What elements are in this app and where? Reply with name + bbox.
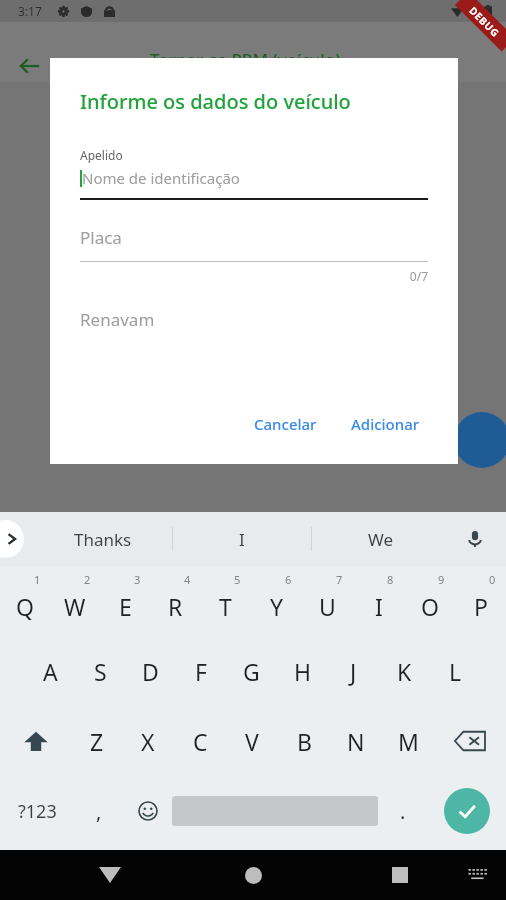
button[interactable]: We: [312, 512, 450, 566]
staticText: Tornar-se PRM (veículo): [150, 48, 341, 71]
button[interactable]: Renavam: [80, 308, 155, 331]
staticText: Cancelar: [254, 414, 317, 434]
staticText: O: [421, 591, 439, 622]
staticText: 3:17: [18, 3, 42, 19]
button[interactable]: Adicionar: [343, 406, 428, 442]
button[interactable]: Q: [0, 566, 50, 636]
staticText: W: [64, 591, 86, 622]
staticText: S: [94, 656, 107, 687]
staticText: X: [141, 726, 155, 757]
button[interactable]: M: [382, 706, 434, 776]
staticText: T: [219, 591, 232, 622]
staticText: C: [193, 726, 208, 757]
button[interactable]: Emoji: [123, 776, 172, 846]
button[interactable]: O: [404, 566, 455, 636]
staticText: L: [449, 656, 462, 687]
staticText: We: [368, 528, 394, 551]
button[interactable]: ?123: [0, 776, 74, 846]
button[interactable]: Hide keyboard: [88, 853, 132, 897]
button[interactable]: C: [174, 706, 226, 776]
button[interactable]: Thanks: [34, 512, 172, 566]
staticText: H: [294, 656, 312, 687]
staticText: B: [297, 726, 312, 757]
button[interactable]: I: [353, 566, 404, 636]
staticText: U: [319, 591, 336, 622]
staticText: 9: [438, 572, 445, 587]
button[interactable]: K: [379, 636, 430, 706]
button[interactable]: Recents: [378, 853, 422, 897]
button[interactable]: Expand suggestions: [0, 520, 24, 558]
button[interactable]: V: [226, 706, 278, 776]
button[interactable]: A: [25, 636, 75, 706]
staticText: Thanks: [74, 528, 132, 551]
staticText: G: [243, 656, 260, 687]
button[interactable]: Z: [71, 706, 122, 776]
button[interactable]: L: [430, 636, 481, 706]
button[interactable]: Shift: [0, 706, 71, 776]
button[interactable]: D: [125, 636, 175, 706]
staticText: D: [142, 656, 159, 687]
staticText: M: [398, 726, 419, 757]
staticText: Q: [16, 591, 34, 622]
staticText: 3: [134, 572, 141, 587]
button[interactable]: W: [50, 566, 100, 636]
button[interactable]: Switch keyboard: [458, 855, 498, 895]
staticText: .: [400, 798, 406, 825]
button[interactable]: T: [200, 566, 251, 636]
button[interactable]: E: [100, 566, 150, 636]
staticText: 4: [184, 572, 191, 587]
staticText: V: [245, 726, 259, 757]
staticText: I: [375, 591, 383, 622]
staticText: DEBUG: [466, 3, 503, 40]
button[interactable]: B: [278, 706, 330, 776]
staticText: Y: [270, 591, 284, 622]
staticText: 7: [336, 572, 343, 587]
button[interactable]: Placa: [80, 226, 122, 249]
staticText: P: [474, 591, 488, 622]
button[interactable]: Enter: [427, 776, 506, 846]
staticText: 6: [285, 572, 292, 587]
button[interactable]: S: [75, 636, 125, 706]
button[interactable]: F: [175, 636, 226, 706]
staticText: 0/7: [80, 268, 428, 284]
button[interactable]: ,: [74, 776, 123, 846]
button[interactable]: Y: [251, 566, 302, 636]
staticText: ,: [96, 798, 102, 825]
button[interactable]: .: [378, 776, 427, 846]
staticText: 8: [387, 572, 394, 587]
button[interactable]: H: [277, 636, 328, 706]
staticText: Apelido: [80, 147, 123, 163]
staticText: R: [168, 591, 183, 622]
button[interactable]: Add: [454, 412, 506, 468]
staticText: 2: [84, 572, 91, 587]
staticText: 5: [234, 572, 241, 587]
button[interactable]: X: [122, 706, 174, 776]
staticText: 0: [489, 572, 496, 587]
staticText: Nome de identificação: [82, 168, 240, 188]
button[interactable]: R: [150, 566, 200, 636]
staticText: J: [350, 656, 357, 687]
staticText: K: [397, 656, 412, 687]
staticText: Informe os dados do veículo: [80, 88, 351, 115]
staticText: ?123: [18, 799, 57, 824]
button[interactable]: G: [226, 636, 277, 706]
staticText: N: [347, 726, 365, 757]
button[interactable]: U: [302, 566, 353, 636]
button[interactable]: Backspace: [434, 706, 506, 776]
button[interactable]: N: [330, 706, 382, 776]
staticText: 1: [34, 572, 41, 587]
button[interactable]: Cancelar: [246, 406, 325, 442]
button[interactable]: Voice input: [456, 520, 494, 558]
button[interactable]: Back: [8, 44, 52, 88]
staticText: A: [43, 656, 58, 687]
staticText: F: [195, 656, 207, 687]
button[interactable]: Home: [231, 853, 275, 897]
staticText: Z: [90, 726, 104, 757]
staticText: I: [239, 528, 245, 551]
staticText: Adicionar: [351, 414, 420, 434]
button[interactable]: J: [328, 636, 379, 706]
button[interactable]: P: [455, 566, 506, 636]
staticText: E: [119, 591, 132, 622]
button[interactable]: I: [173, 512, 311, 566]
